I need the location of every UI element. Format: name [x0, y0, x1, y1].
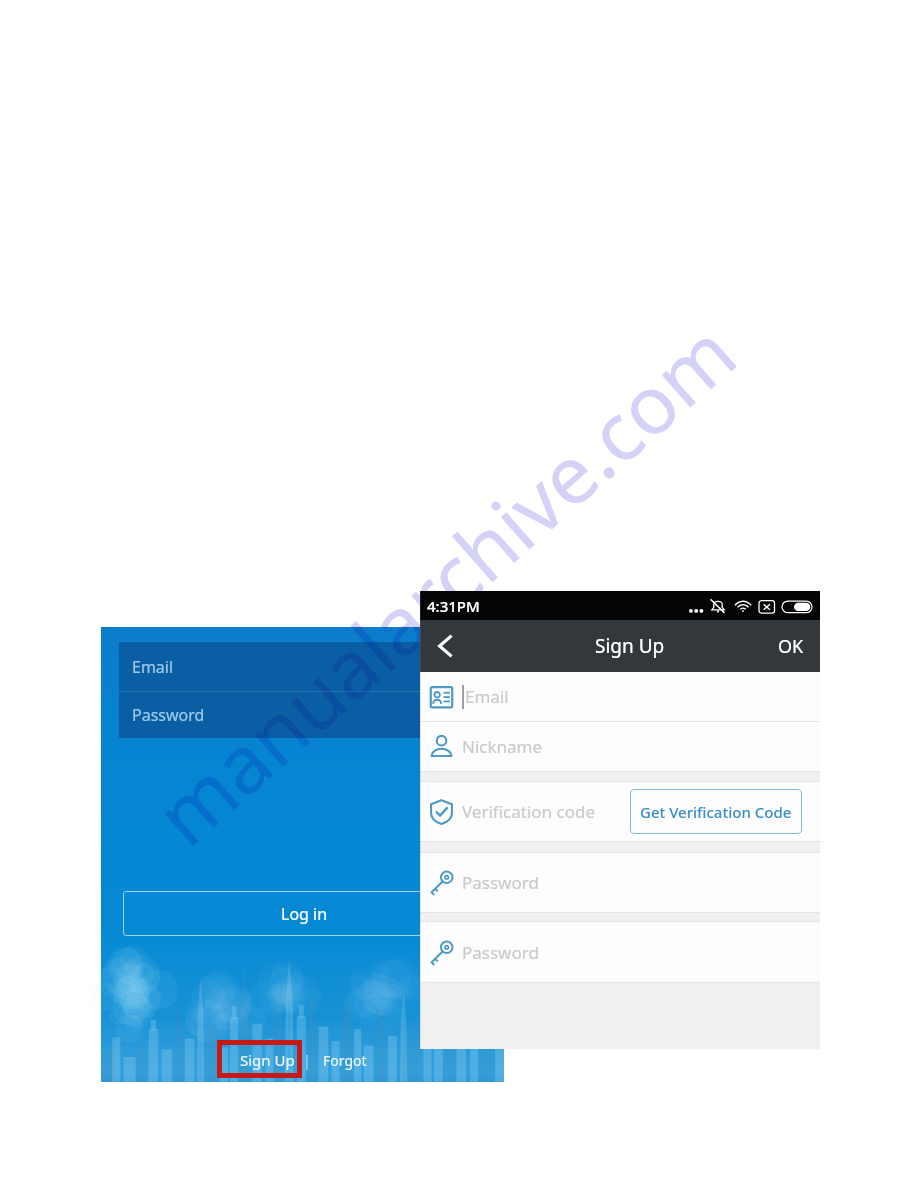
staticText: Email [465, 685, 509, 708]
button[interactable]: Back [420, 620, 472, 672]
staticText: Password [462, 941, 539, 964]
staticText: Nickname [462, 735, 543, 758]
button[interactable]: Nickname [420, 722, 820, 771]
button[interactable]: Password [420, 853, 820, 912]
staticText: Sign Up [595, 633, 665, 659]
button[interactable]: Password [119, 692, 487, 738]
button[interactable]: Verification code [420, 782, 820, 841]
button[interactable]: Sign Up [232, 1045, 303, 1075]
staticText: OK [778, 634, 804, 659]
button[interactable]: Log in [123, 891, 485, 936]
button[interactable]: OK [762, 622, 820, 671]
staticText: | [303, 1051, 311, 1070]
staticText: Verification code [462, 800, 596, 823]
staticText: Password [462, 871, 539, 894]
staticText: Log in [281, 903, 328, 925]
staticText: Forgot [323, 1051, 367, 1070]
button[interactable]: Email [420, 672, 820, 721]
staticText: Sign Up [240, 1050, 295, 1070]
button[interactable]: Password [420, 922, 820, 982]
staticText: Password [132, 704, 205, 726]
button[interactable]: Forgot [315, 1046, 375, 1075]
staticText: 4:31PM [427, 596, 480, 616]
staticText: Get Verification Code [640, 802, 792, 822]
staticText: Email [132, 656, 174, 678]
button[interactable]: Email [119, 642, 487, 691]
button[interactable]: Get Verification Code [630, 789, 802, 834]
